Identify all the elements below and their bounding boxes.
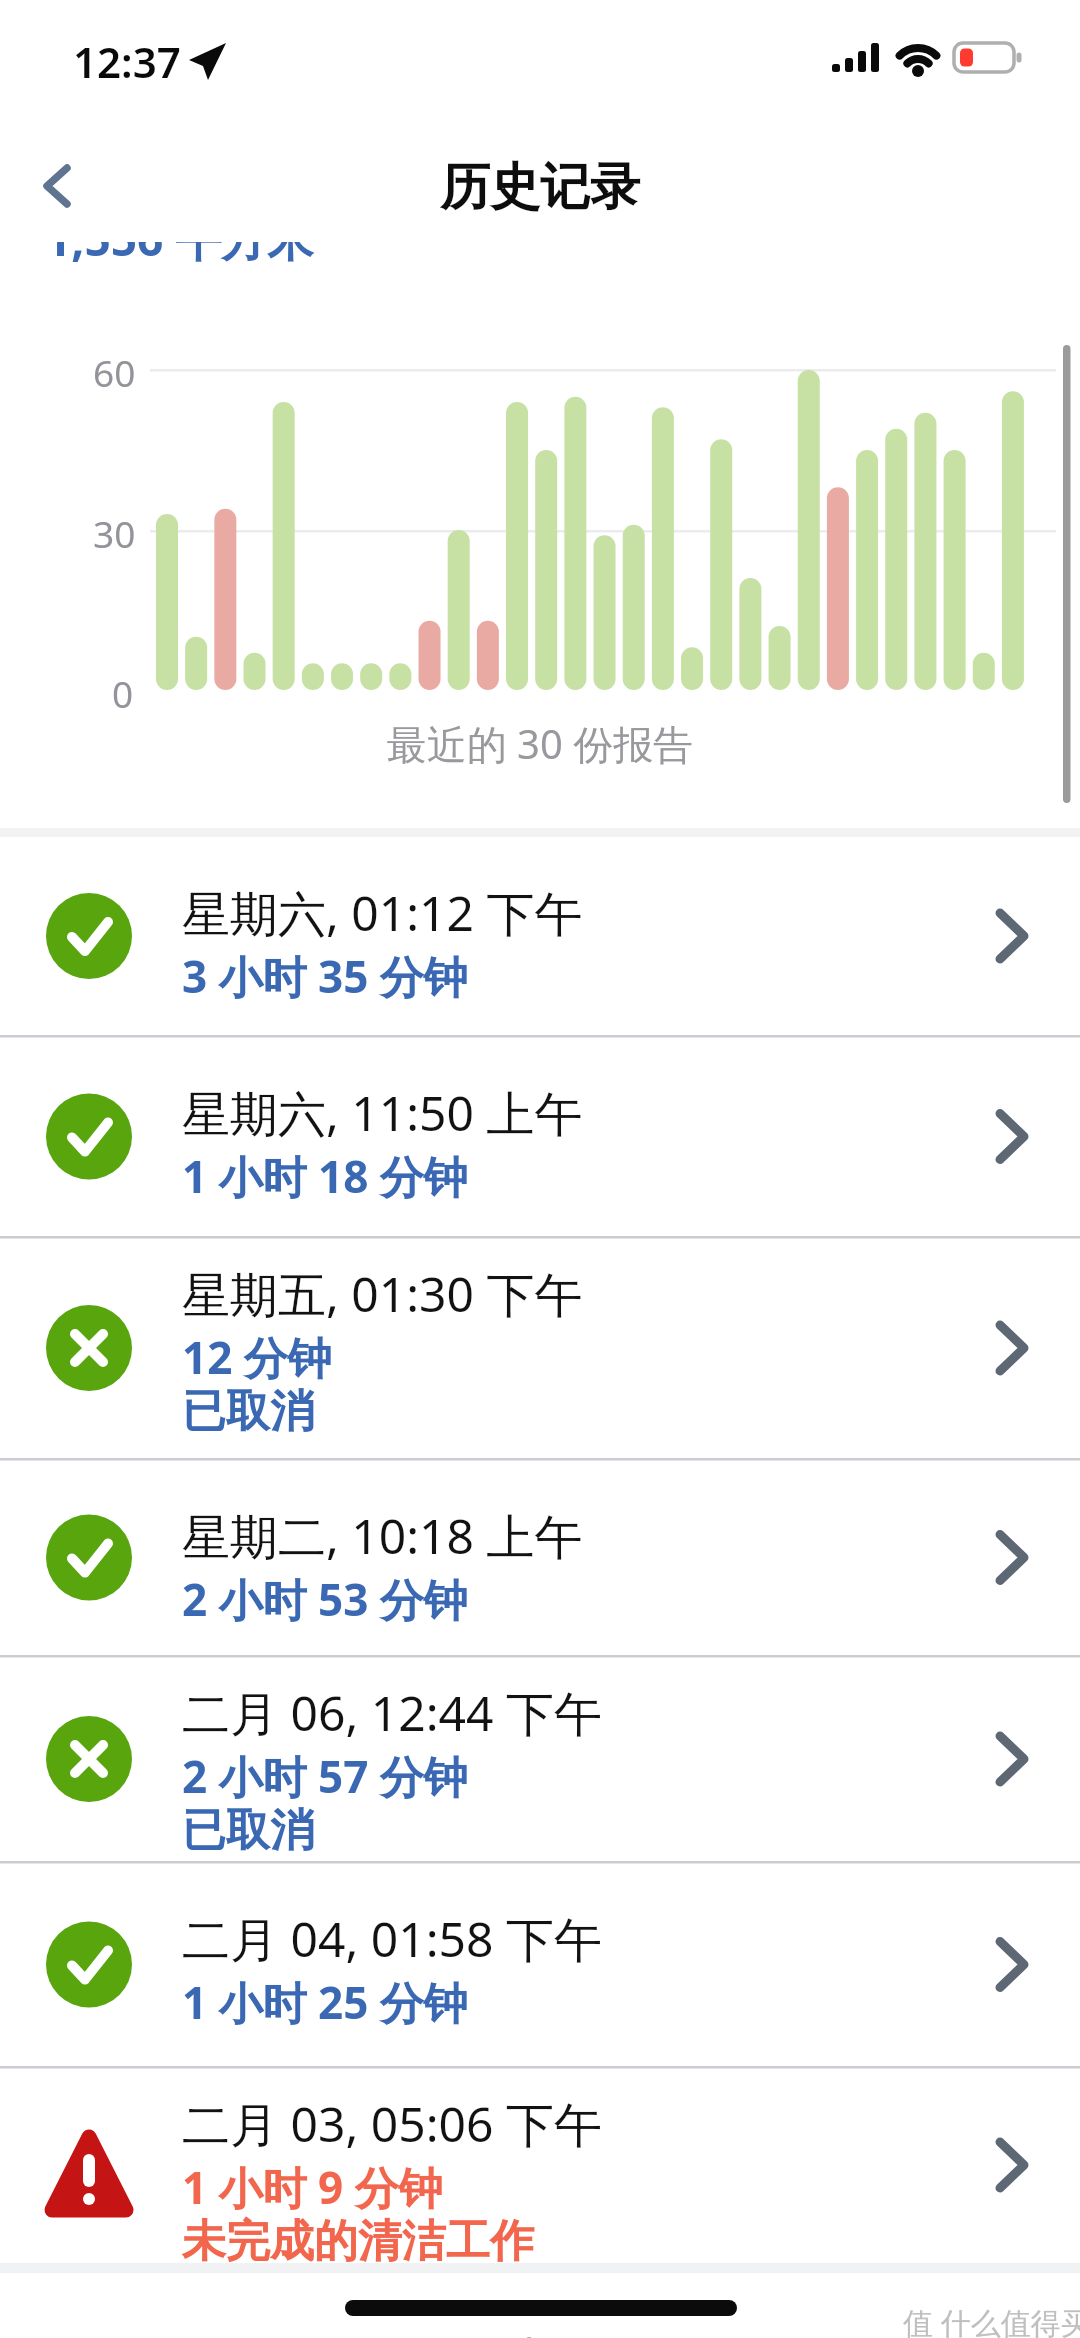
staticText: 1 小时 9 分钟: [182, 2157, 443, 2217]
staticText: 值 什么值得买: [903, 2302, 1080, 2338]
staticText: 12 分钟: [182, 1327, 332, 1387]
staticText: 1,556 平方米: [45, 207, 314, 270]
staticText: 最近的 30 份报告: [0, 716, 1080, 771]
staticText: 12:37: [73, 33, 181, 90]
staticText: 2 小时 53 分钟: [182, 1569, 468, 1629]
staticText: 3 小时 35 分钟: [182, 946, 468, 1006]
staticText: 二月 04, 01:58 下午: [182, 1906, 602, 1972]
staticText: 1 小时 25 分钟: [182, 1972, 468, 2032]
staticText: 星期六, 01:12 下午: [182, 880, 583, 946]
button[interactable]: [0, 1237, 1080, 1459]
staticText: 1 小时 18 分钟: [182, 1146, 468, 1206]
button[interactable]: [0, 836, 1080, 1036]
button[interactable]: [0, 1656, 1080, 1862]
staticText: 30: [93, 508, 136, 558]
button[interactable]: [0, 1459, 1080, 1656]
button[interactable]: [0, 1862, 1080, 2067]
staticText: 历史记录: [0, 156, 1080, 219]
staticText: 星期五, 01:30 下午: [182, 1261, 583, 1327]
staticText: 未完成的清洁工作: [182, 2214, 534, 2269]
staticText: 0: [112, 668, 134, 718]
button[interactable]: [0, 1036, 1080, 1237]
staticText: 已取消: [182, 1803, 314, 1858]
staticText: 60: [93, 347, 136, 397]
button[interactable]: [0, 2067, 1080, 2263]
button[interactable]: [25, 145, 105, 225]
staticText: 星期二, 10:18 上午: [182, 1503, 583, 1569]
staticText: 已取消: [182, 1384, 314, 1439]
staticText: 二月 03, 05:06 下午: [182, 2091, 602, 2157]
staticText: 二月 06, 12:44 下午: [182, 1680, 602, 1746]
staticText: 星期六, 11:50 上午: [182, 1080, 583, 1146]
staticText: 2 小时 57 分钟: [182, 1746, 468, 1806]
